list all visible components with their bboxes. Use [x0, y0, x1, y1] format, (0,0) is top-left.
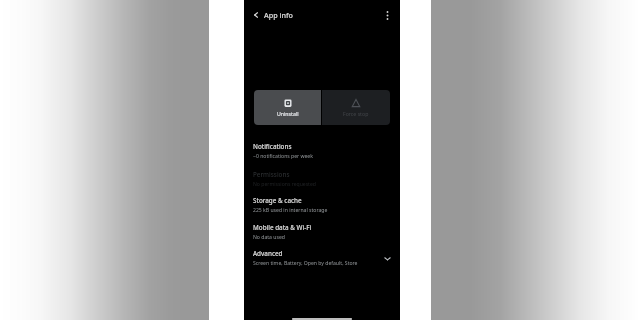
- staticText: No permissions requested: [253, 181, 316, 188]
- staticText: Notifications: [253, 142, 292, 151]
- staticText: No data used: [253, 234, 285, 241]
- button[interactable]: Back: [250, 9, 262, 21]
- staticText: App info: [264, 10, 293, 20]
- staticText: Advanced: [253, 249, 283, 258]
- staticText: Screen time, Battery, Open by default, S…: [253, 260, 358, 267]
- staticText: ~0 notifications per week: [253, 153, 313, 160]
- button[interactable]: Permissions: [244, 166, 400, 192]
- staticText: Force stop: [343, 110, 369, 117]
- staticText: Uninstall: [277, 110, 299, 117]
- button[interactable]: Advanced: [244, 245, 400, 271]
- button[interactable]: Notifications: [244, 138, 400, 164]
- staticText: Permissions: [253, 170, 290, 179]
- button[interactable]: Mobile data & Wi-Fi: [244, 219, 400, 245]
- button[interactable]: Storage & cache: [244, 192, 400, 218]
- button[interactable]: Force stop: [322, 90, 390, 125]
- button[interactable]: More options: [381, 9, 393, 21]
- button[interactable]: Uninstall: [254, 90, 321, 125]
- staticText: Storage & cache: [253, 196, 302, 205]
- staticText: Mobile data & Wi-Fi: [253, 223, 312, 232]
- staticText: 225 kB used in internal storage: [253, 207, 328, 214]
